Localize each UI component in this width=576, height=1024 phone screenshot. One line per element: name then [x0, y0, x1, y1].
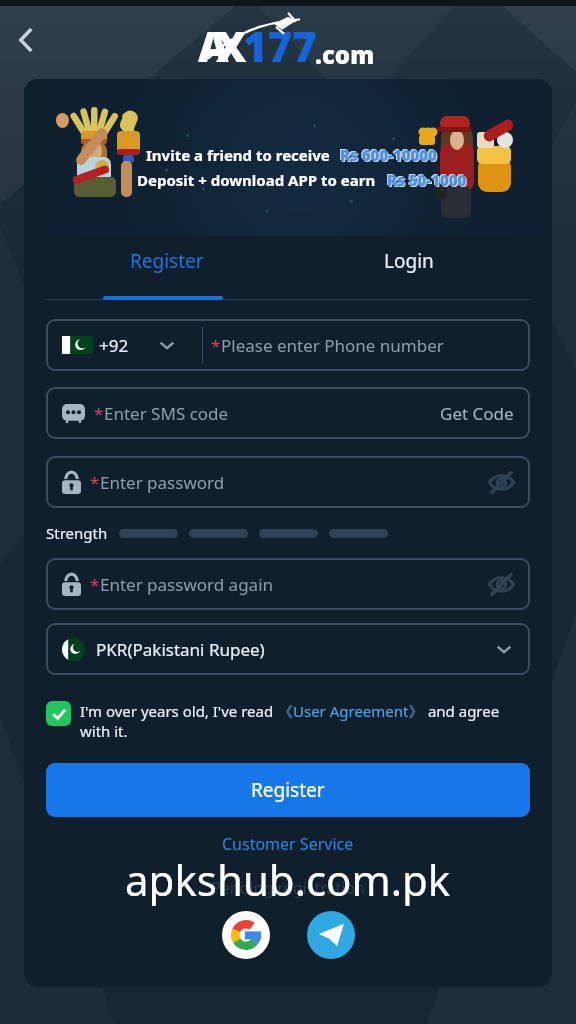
staticText: and agree — [424, 701, 500, 721]
staticText: Rs 600-10000 — [340, 145, 437, 165]
staticText: Strength — [46, 523, 108, 543]
staticText: * — [90, 471, 100, 494]
staticText: Rs 600-10000 — [341, 146, 438, 166]
button[interactable]: Back — [6, 20, 46, 60]
staticText: Register — [251, 777, 325, 803]
button[interactable]: PKR(Pakistani Rupee) — [46, 623, 530, 675]
staticText: Deposit + download APP to earn — [137, 170, 376, 190]
staticText: * — [211, 334, 221, 357]
button[interactable]: Register — [46, 236, 288, 300]
staticText: * — [94, 402, 104, 425]
staticText: Enter password again — [100, 573, 274, 596]
staticText: Please enter Phone number — [221, 334, 444, 357]
staticText: +92 — [99, 334, 129, 357]
staticText: Enter SMS code — [104, 402, 229, 425]
staticText: Rs 50-1000 — [388, 171, 468, 191]
button[interactable]: Sign in with Telegram — [307, 911, 355, 959]
staticText: Invite a friend to receive — [146, 145, 330, 165]
staticText: Rs 50-1000 — [386, 169, 466, 189]
staticText: PKR(Pakistani Rupee) — [96, 638, 265, 661]
staticText: * — [90, 573, 100, 596]
staticText: Rs 600-10000 — [339, 144, 436, 164]
staticText: Get Code — [440, 402, 514, 425]
button[interactable]: +92 — [46, 319, 530, 371]
staticText: X — [216, 17, 247, 73]
staticText: A — [198, 17, 229, 73]
staticText: Login — [384, 248, 434, 274]
staticText: Rs 50-1000 — [387, 170, 467, 190]
staticText: .com — [315, 38, 375, 71]
staticText: 177 — [243, 17, 317, 73]
button[interactable]: 《User Agreement》 — [278, 701, 424, 721]
button[interactable]: * — [46, 387, 530, 439]
staticText: I'm over years old, I've read — [80, 701, 278, 721]
staticText: with it. — [80, 721, 128, 741]
button[interactable]: Register — [46, 763, 530, 817]
button[interactable]: * — [46, 456, 530, 508]
staticText: Enter password — [100, 471, 225, 494]
button[interactable]: Sign in with Google — [222, 911, 270, 959]
staticText: Pending registration — [211, 877, 365, 899]
staticText: apkshub.com.pk — [125, 851, 451, 908]
button[interactable]: Login — [288, 236, 530, 300]
button[interactable]: Customer Service — [222, 833, 354, 855]
staticText: Register — [130, 248, 204, 274]
button[interactable]: Agree to user agreement — [46, 701, 71, 726]
button[interactable]: * — [46, 558, 530, 610]
